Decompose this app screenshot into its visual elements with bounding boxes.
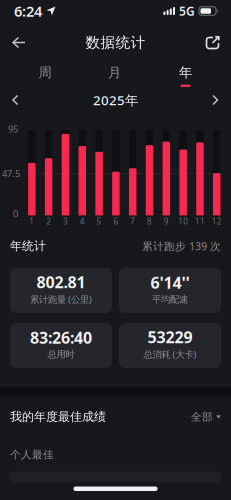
staticText: 95 [8,123,18,135]
staticText: 全部 [191,410,213,423]
staticText: 5 [97,216,102,227]
staticText: 我的年度最佳成绩 [10,409,106,424]
staticText: 11 [195,216,205,227]
button[interactable]: Previous year [3,88,28,111]
staticText: 累计跑量 (公里) [30,293,92,306]
staticText: 47.5 [2,167,20,180]
staticText: 数据统计 [85,33,145,51]
staticText: 8 [147,216,152,227]
button[interactable]: 月 [108,65,121,87]
staticText: 2025年 [93,91,138,109]
staticText: 6'14'' [150,272,189,293]
button[interactable]: 周 [38,65,51,87]
staticText: 5G [179,3,195,19]
staticText: 53229 [147,326,192,348]
button[interactable]: 年 [179,65,192,87]
staticText: 0 [13,207,18,220]
staticText: 6:24 [14,1,42,21]
staticText: 1 [29,216,34,227]
button[interactable]: Next year [203,88,228,111]
staticText: 6 [113,216,118,227]
staticText: 7 [130,216,135,227]
staticText: 个人最佳 [10,448,54,461]
staticText: 月 [108,64,121,81]
staticText: 4 [80,216,85,227]
staticText: 年统计 [10,239,46,253]
staticText: 802.81 [36,271,85,293]
staticText: 2 [46,216,51,227]
staticText: 总消耗 (大卡) [143,348,196,361]
staticText: 累计跑步 139 次 [142,239,221,253]
staticText: 3 [63,216,68,227]
staticText: 平均配速 [152,294,188,305]
staticText: 9 [164,216,169,227]
button[interactable]: Filter: all [191,410,221,423]
button[interactable]: Back [2,28,36,56]
button[interactable]: Share [196,27,229,58]
staticText: 总用时 [47,349,74,360]
staticText: 83:26:40 [30,327,92,348]
staticText: 12 [212,216,222,227]
staticText: 10 [178,216,188,227]
staticText: 周 [38,64,51,81]
staticText: 年 [179,64,192,81]
